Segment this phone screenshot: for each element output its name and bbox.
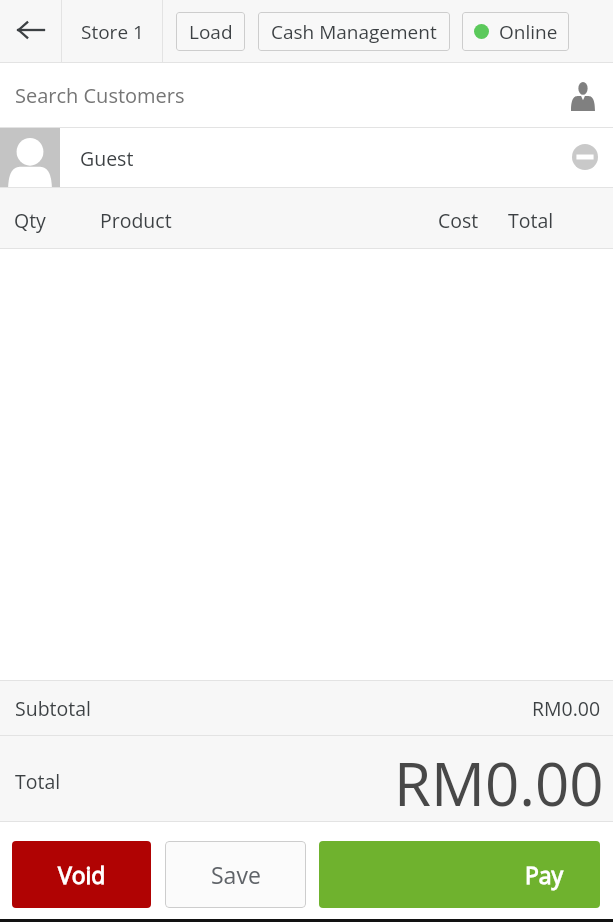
button[interactable]: Back xyxy=(0,0,61,63)
staticText: Total xyxy=(15,768,61,795)
button[interactable]: Cash Management xyxy=(258,12,450,51)
staticText: Void xyxy=(58,859,106,890)
staticText: Store 1 xyxy=(81,19,144,45)
staticText: Guest xyxy=(80,145,134,172)
staticText: Cost xyxy=(438,207,479,234)
button[interactable]: Remove customer xyxy=(568,140,602,174)
other: Customer xyxy=(566,79,600,113)
staticText: Subtotal xyxy=(15,695,91,722)
staticText: Save xyxy=(211,859,261,890)
button[interactable]: Pay xyxy=(319,841,600,908)
staticText: Product xyxy=(100,207,172,234)
button[interactable]: Load xyxy=(176,12,245,51)
button[interactable]: Guest xyxy=(0,128,613,188)
staticText: Cash Management xyxy=(271,19,437,45)
staticText: RM0.00 xyxy=(394,742,604,822)
button[interactable]: Search Customers xyxy=(0,63,613,128)
button[interactable]: Save xyxy=(165,841,306,908)
staticText: Load xyxy=(189,19,233,45)
staticText: Online xyxy=(499,19,558,45)
staticText: Pay xyxy=(525,859,564,890)
button[interactable]: Online xyxy=(462,12,569,51)
button[interactable]: Store 1 xyxy=(62,0,162,63)
staticText: Total xyxy=(508,207,554,234)
button[interactable]: Void xyxy=(12,841,151,908)
staticText: RM0.00 xyxy=(532,695,601,722)
staticText: Search Customers xyxy=(15,82,185,109)
staticText: Qty xyxy=(14,207,46,234)
